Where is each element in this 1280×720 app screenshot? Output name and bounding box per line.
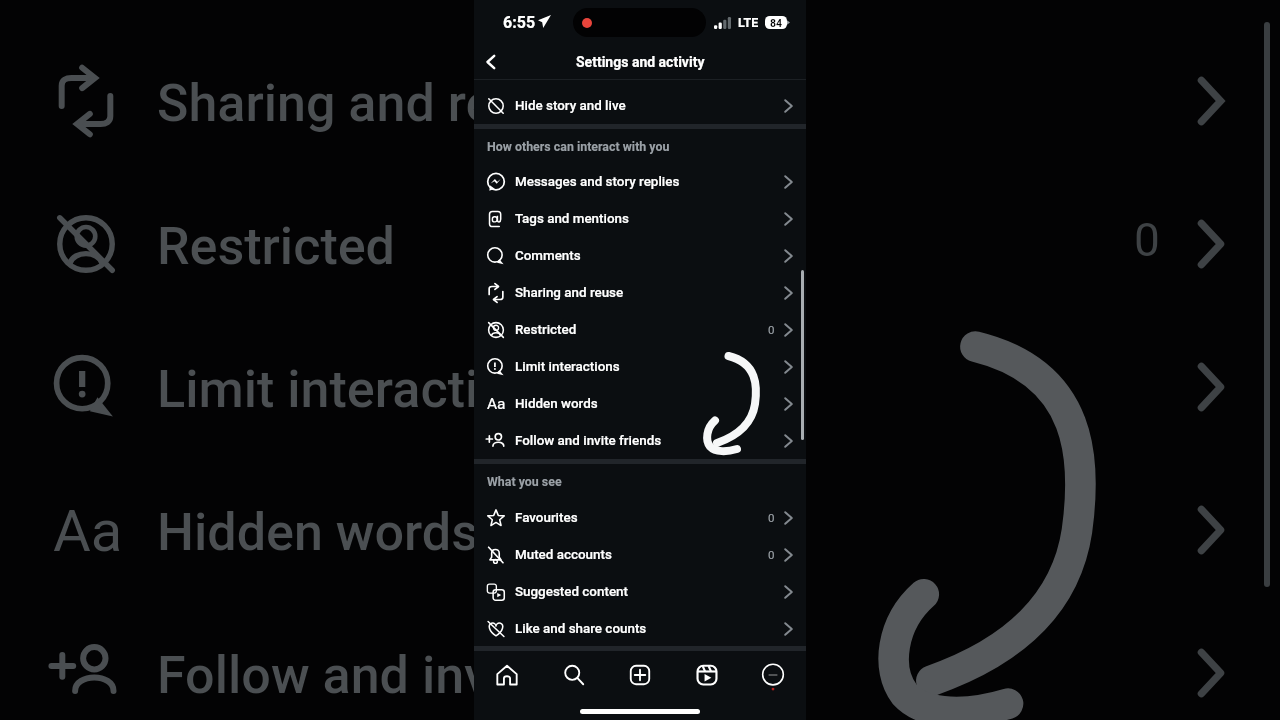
staticText: 6:55: [503, 13, 536, 32]
staticText: Aa: [53, 497, 123, 565]
staticText: Sharing and reuse: [515, 285, 624, 301]
button[interactable]: Search: [557, 658, 591, 692]
staticText: Hidden words: [515, 396, 598, 412]
staticText: What you see: [487, 474, 562, 489]
button[interactable]: Comments: [474, 237, 806, 274]
button[interactable]: Restricted: [474, 311, 806, 348]
button[interactable]: Hide story and live: [474, 87, 806, 124]
button[interactable]: Follow and invite friends: [474, 422, 806, 459]
button[interactable]: Aa: [474, 385, 806, 422]
button[interactable]: Limit interactions: [474, 348, 806, 385]
staticText: 0: [1134, 213, 1160, 267]
button[interactable]: Reels: [690, 658, 724, 692]
staticText: Comments: [515, 248, 581, 264]
staticText: Favourites: [515, 510, 578, 526]
staticText: Suggested content: [515, 584, 628, 600]
staticText: 84: [770, 17, 783, 29]
staticText: Restricted: [515, 322, 577, 338]
staticText: Limit interactions: [515, 359, 620, 375]
staticText: Limit interactio: [157, 359, 508, 420]
button[interactable]: Create: [623, 658, 657, 692]
staticText: Hide story and live: [515, 98, 626, 114]
staticText: 0: [768, 323, 775, 336]
button[interactable]: Muted accounts: [474, 536, 806, 573]
staticText: 0: [768, 548, 775, 561]
staticText: Like and share counts: [515, 621, 647, 637]
staticText: How others can interact with you: [487, 139, 670, 154]
staticText: Muted accounts: [515, 547, 612, 563]
button[interactable]: Back: [474, 45, 508, 79]
staticText: 0: [768, 511, 775, 524]
button[interactable]: Like and share counts: [474, 610, 806, 647]
button[interactable]: Tags and mentions: [474, 200, 806, 237]
button[interactable]: Suggested content: [474, 573, 806, 610]
staticText: Follow and invi: [157, 645, 504, 706]
button[interactable]: Profile: [756, 658, 790, 692]
button[interactable]: Sharing and reuse: [474, 274, 806, 311]
staticText: Restricted: [157, 216, 395, 277]
staticText: Tags and mentions: [515, 211, 629, 227]
button[interactable]: Messages and story replies: [474, 163, 806, 200]
button[interactable]: Home: [490, 658, 524, 692]
staticText: Hidden words: [157, 502, 479, 563]
staticText: Settings and activity: [576, 54, 705, 70]
staticText: Sharing and re: [157, 73, 494, 134]
staticText: Aa: [487, 395, 505, 413]
button[interactable]: Favourites: [474, 499, 806, 536]
staticText: Follow and invite friends: [515, 433, 662, 449]
staticText: Messages and story replies: [515, 174, 680, 190]
staticText: LTE: [738, 15, 759, 30]
